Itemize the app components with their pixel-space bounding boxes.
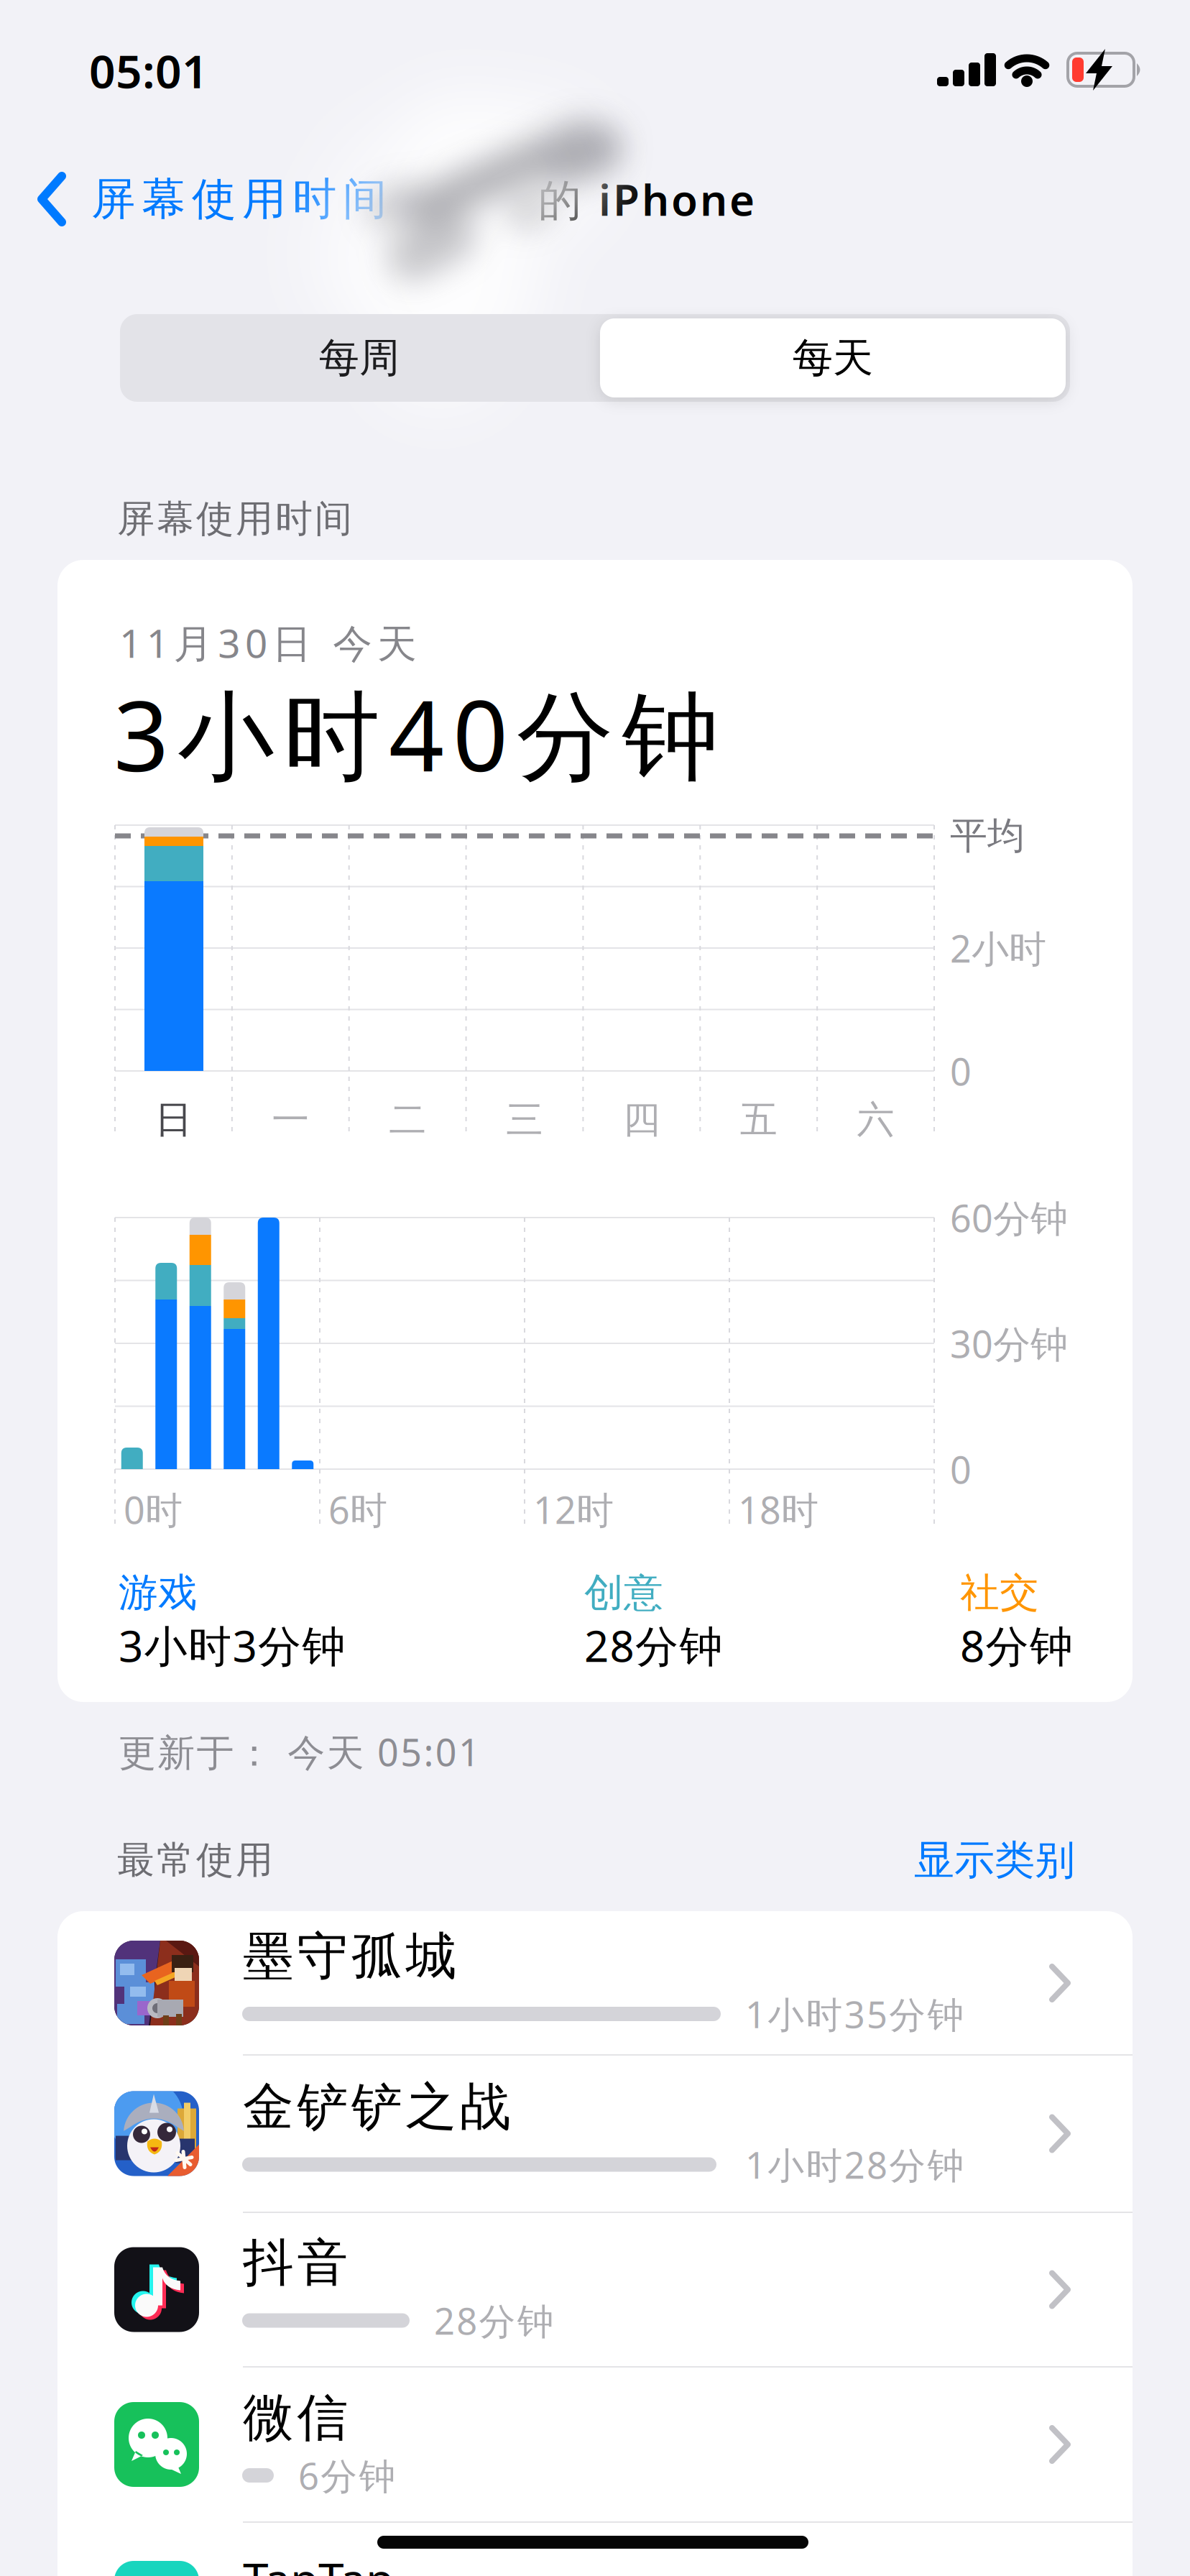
staticText: 二 [389, 1097, 426, 1143]
button[interactable]: 返回 屏幕使用时间 [37, 167, 483, 246]
button[interactable]: 抖音 [57, 2212, 1133, 2367]
staticText: 3小时40分钟 [114, 670, 719, 798]
staticText: 显示类别 [914, 1835, 1075, 1885]
staticText: 三 [506, 1097, 543, 1143]
staticText: 12时 [533, 1485, 614, 1534]
staticText: 社交 [960, 1569, 1039, 1617]
button[interactable]: TapTap [57, 2522, 1133, 2576]
staticText: 28分钟 [584, 1617, 723, 1674]
button[interactable]: 显示类别 [788, 1828, 1075, 1892]
staticText: 屏幕使用时间 [117, 496, 352, 542]
staticText: 平均 [950, 813, 1025, 859]
staticText: 创意 [584, 1569, 663, 1617]
staticText: 的 iPhone [538, 170, 755, 228]
button[interactable]: 墨守孤城 [57, 1911, 1133, 2055]
staticText: 六 [857, 1097, 894, 1143]
staticText: 2小时 [950, 923, 1046, 973]
staticText: 抖音 [243, 2232, 348, 2294]
staticText: TapTap [243, 2548, 394, 2576]
staticText: 6分钟 [298, 2451, 396, 2500]
staticText: 更新于： 今天 05:01 [119, 1727, 480, 1776]
button[interactable]: 每周 [122, 314, 596, 402]
button[interactable]: 微信 [57, 2367, 1133, 2522]
staticText: 墨守孤城 [243, 1925, 457, 1988]
button[interactable]: 金铲铲之战 [57, 2055, 1133, 2212]
staticText: 金铲铲之战 [243, 2076, 511, 2138]
staticText: 微信 [243, 2387, 348, 2449]
staticText: 18时 [738, 1485, 818, 1534]
staticText: 日 [155, 1097, 192, 1143]
button[interactable]: 每天 [600, 314, 1066, 402]
staticText: 游戏 [119, 1569, 198, 1617]
staticText: 0 [950, 1046, 972, 1096]
staticText: 6时 [328, 1485, 387, 1534]
staticText: 28分钟 [434, 2296, 554, 2345]
staticText: 1小时35分钟 [745, 1990, 964, 2038]
staticText: 屏幕使用时间 [91, 172, 387, 226]
staticText: 05:01 [89, 40, 208, 101]
staticText: 每周 [319, 333, 400, 383]
staticText: 0时 [124, 1485, 183, 1534]
staticText: 11月30日 今天 [119, 616, 417, 669]
staticText: 一 [272, 1097, 309, 1143]
staticText: 0 [950, 1444, 972, 1494]
staticText: 30分钟 [950, 1319, 1068, 1368]
staticText: 每天 [793, 333, 873, 383]
staticText: 3小时3分钟 [119, 1617, 345, 1674]
staticText: 四 [623, 1097, 660, 1143]
staticText: 最常使用 [117, 1837, 273, 1883]
staticText: 1小时28分钟 [745, 2140, 964, 2189]
staticText: 60分钟 [950, 1193, 1068, 1242]
staticText: 五 [740, 1097, 777, 1143]
staticText: 8分钟 [960, 1617, 1073, 1674]
